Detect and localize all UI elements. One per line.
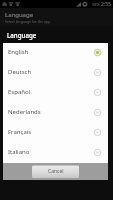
staticText: Nederlands: [8, 108, 41, 116]
button[interactable]: English: [3, 43, 108, 63]
staticText: Español: [8, 88, 31, 96]
other: Not selected: [92, 107, 103, 118]
staticText: Deutsch: [8, 68, 32, 76]
button[interactable]: Deutsch: [3, 63, 108, 83]
button[interactable]: Italiano: [3, 143, 108, 163]
staticText: Language: [5, 11, 34, 19]
staticText: 2:55: [101, 1, 111, 8]
button[interactable]: Cancel: [32, 165, 79, 178]
button[interactable]: Español: [3, 83, 108, 103]
other: Not selected: [92, 67, 103, 78]
other: Not selected: [92, 127, 103, 138]
staticText: 98%: [92, 2, 100, 7]
staticText: Cancel: [48, 168, 64, 175]
staticText: English: [8, 48, 29, 56]
other: Selected: [92, 47, 103, 58]
staticText: Language: [7, 31, 37, 39]
button[interactable]: Français: [3, 123, 108, 143]
staticText: Français: [8, 128, 32, 136]
button[interactable]: Nederlands: [3, 103, 108, 123]
other: Not selected: [92, 147, 103, 158]
other: Not selected: [92, 87, 103, 98]
staticText: Select language for the app: [5, 19, 51, 24]
staticText: Italiano: [8, 148, 30, 156]
